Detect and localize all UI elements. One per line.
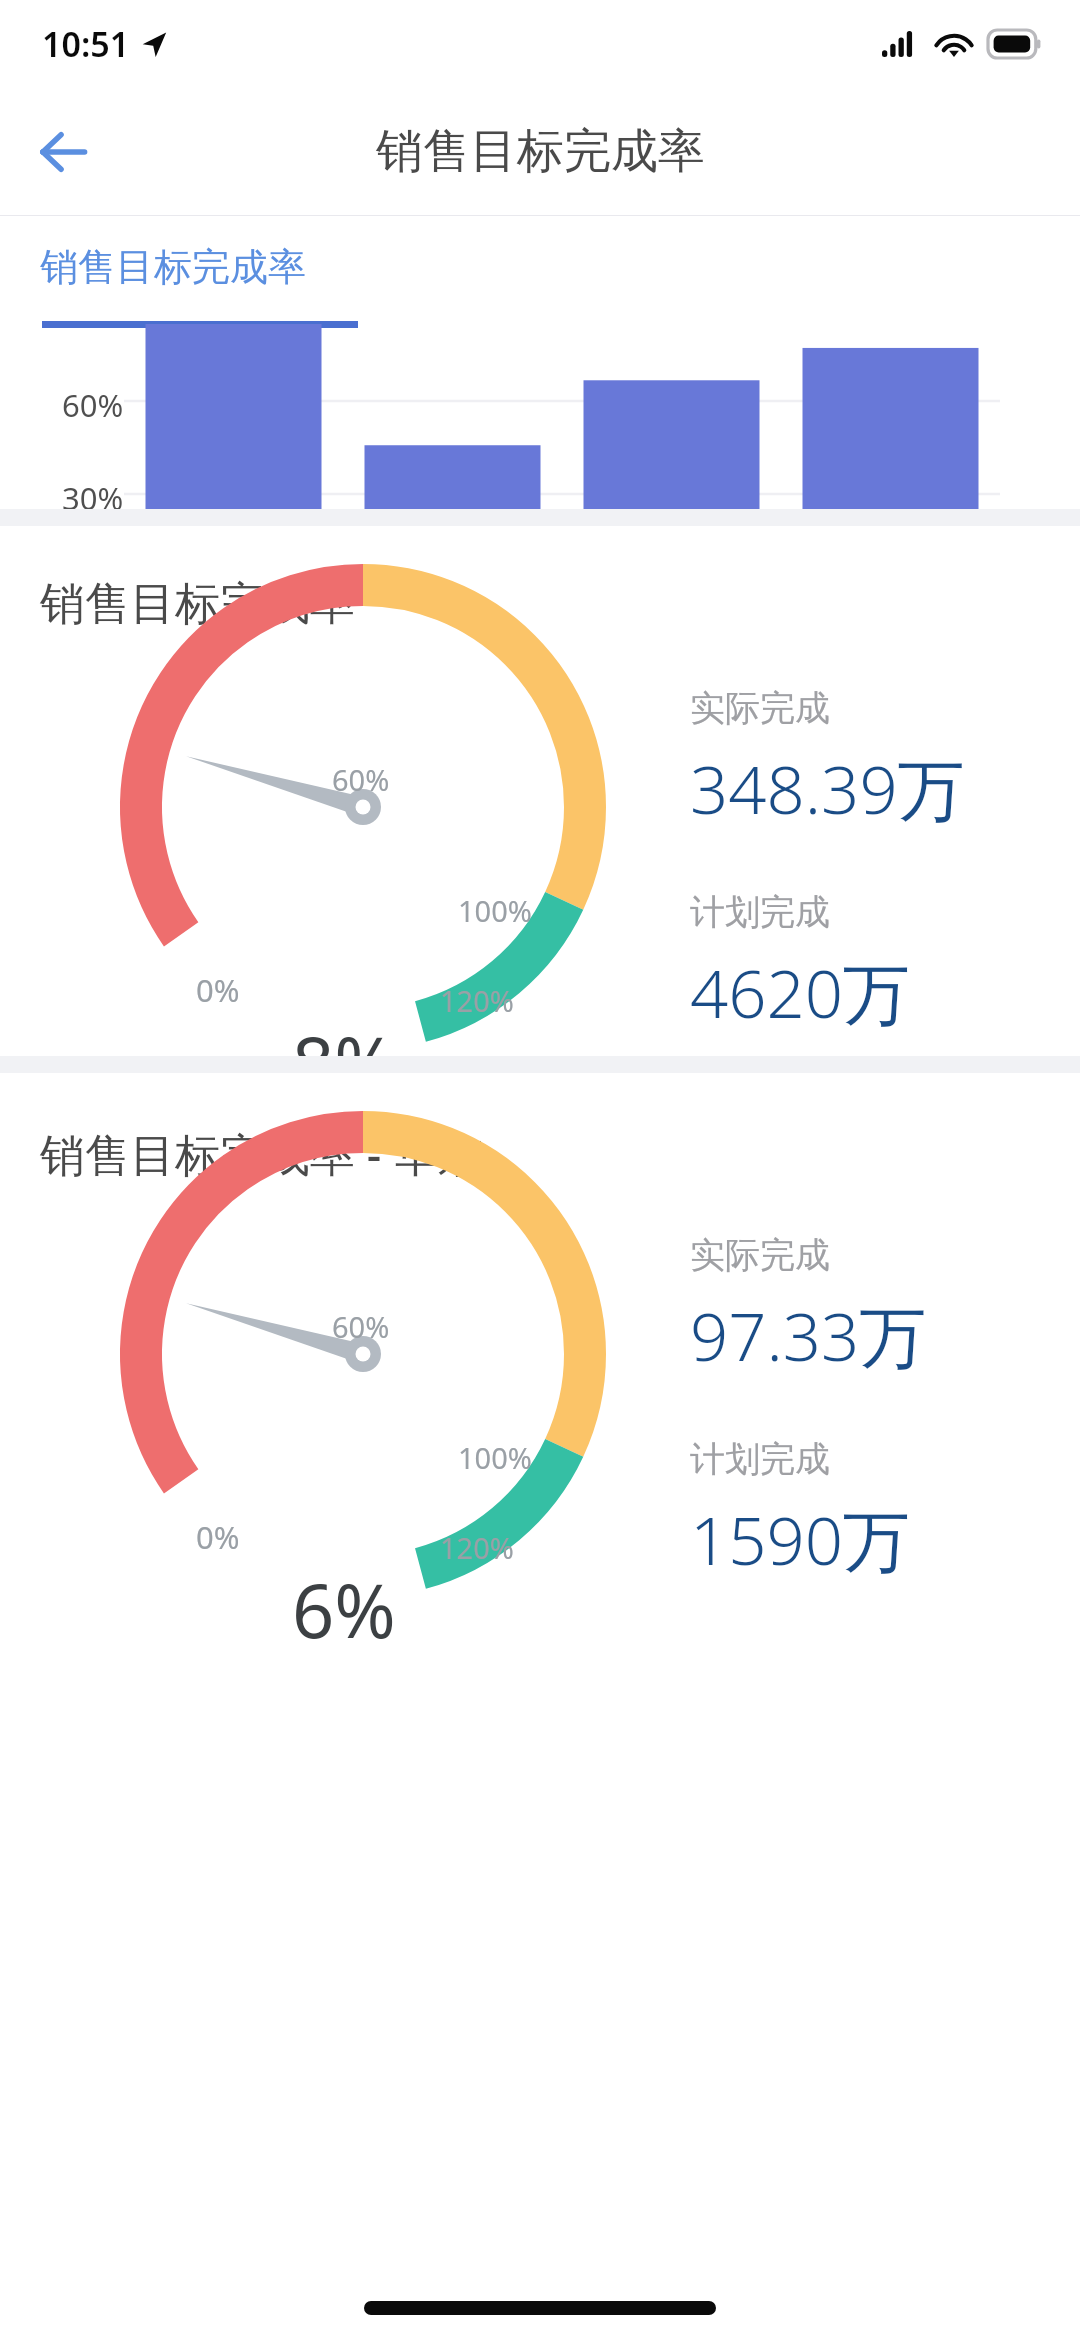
staticText: 8% [292,1012,396,1113]
staticText: 97.33万 [690,1289,927,1381]
staticText: 实际完成 [690,1233,830,1277]
button[interactable]: 返回 [18,107,108,197]
staticText: 60% [62,384,124,426]
button[interactable]: 销售目标完成率 - 华东 [0,1073,1080,1603]
staticText: 348.39万 [690,742,965,834]
staticText: 丹尼 [343,614,562,653]
staticText: 销售目标完成率 [40,243,306,291]
staticText: 0% [196,1516,240,1558]
button[interactable]: 销售目标完成率 [0,526,1080,1056]
staticText: 1590万 [690,1493,911,1585]
staticText: 60% [332,1307,390,1346]
staticText: 100% [458,891,532,930]
staticText: Alice [124,614,343,656]
staticText: 120% [440,1528,514,1567]
staticText: 销售目标完成率 [376,122,705,181]
staticText: 销售目标完成率 - 华东 [40,1123,483,1184]
staticText: 6% [292,1559,396,1660]
staticText: 0% [196,969,240,1011]
staticText: 100% [458,1438,532,1477]
staticText: 0 [90,568,108,610]
button[interactable]: 销售目标完成率 [0,216,1080,509]
staticText: 计划完成 [690,890,830,934]
staticText: 10:51 [42,21,130,67]
staticText: 实际完成 [690,686,830,730]
staticText: 4620万 [690,946,911,1038]
staticText: 120% [440,981,514,1020]
staticText: 60% [332,760,390,799]
staticText: 销售目标完成率 [40,576,355,633]
staticText: 计划完成 [690,1437,830,1481]
staticText: 30% [62,477,124,519]
